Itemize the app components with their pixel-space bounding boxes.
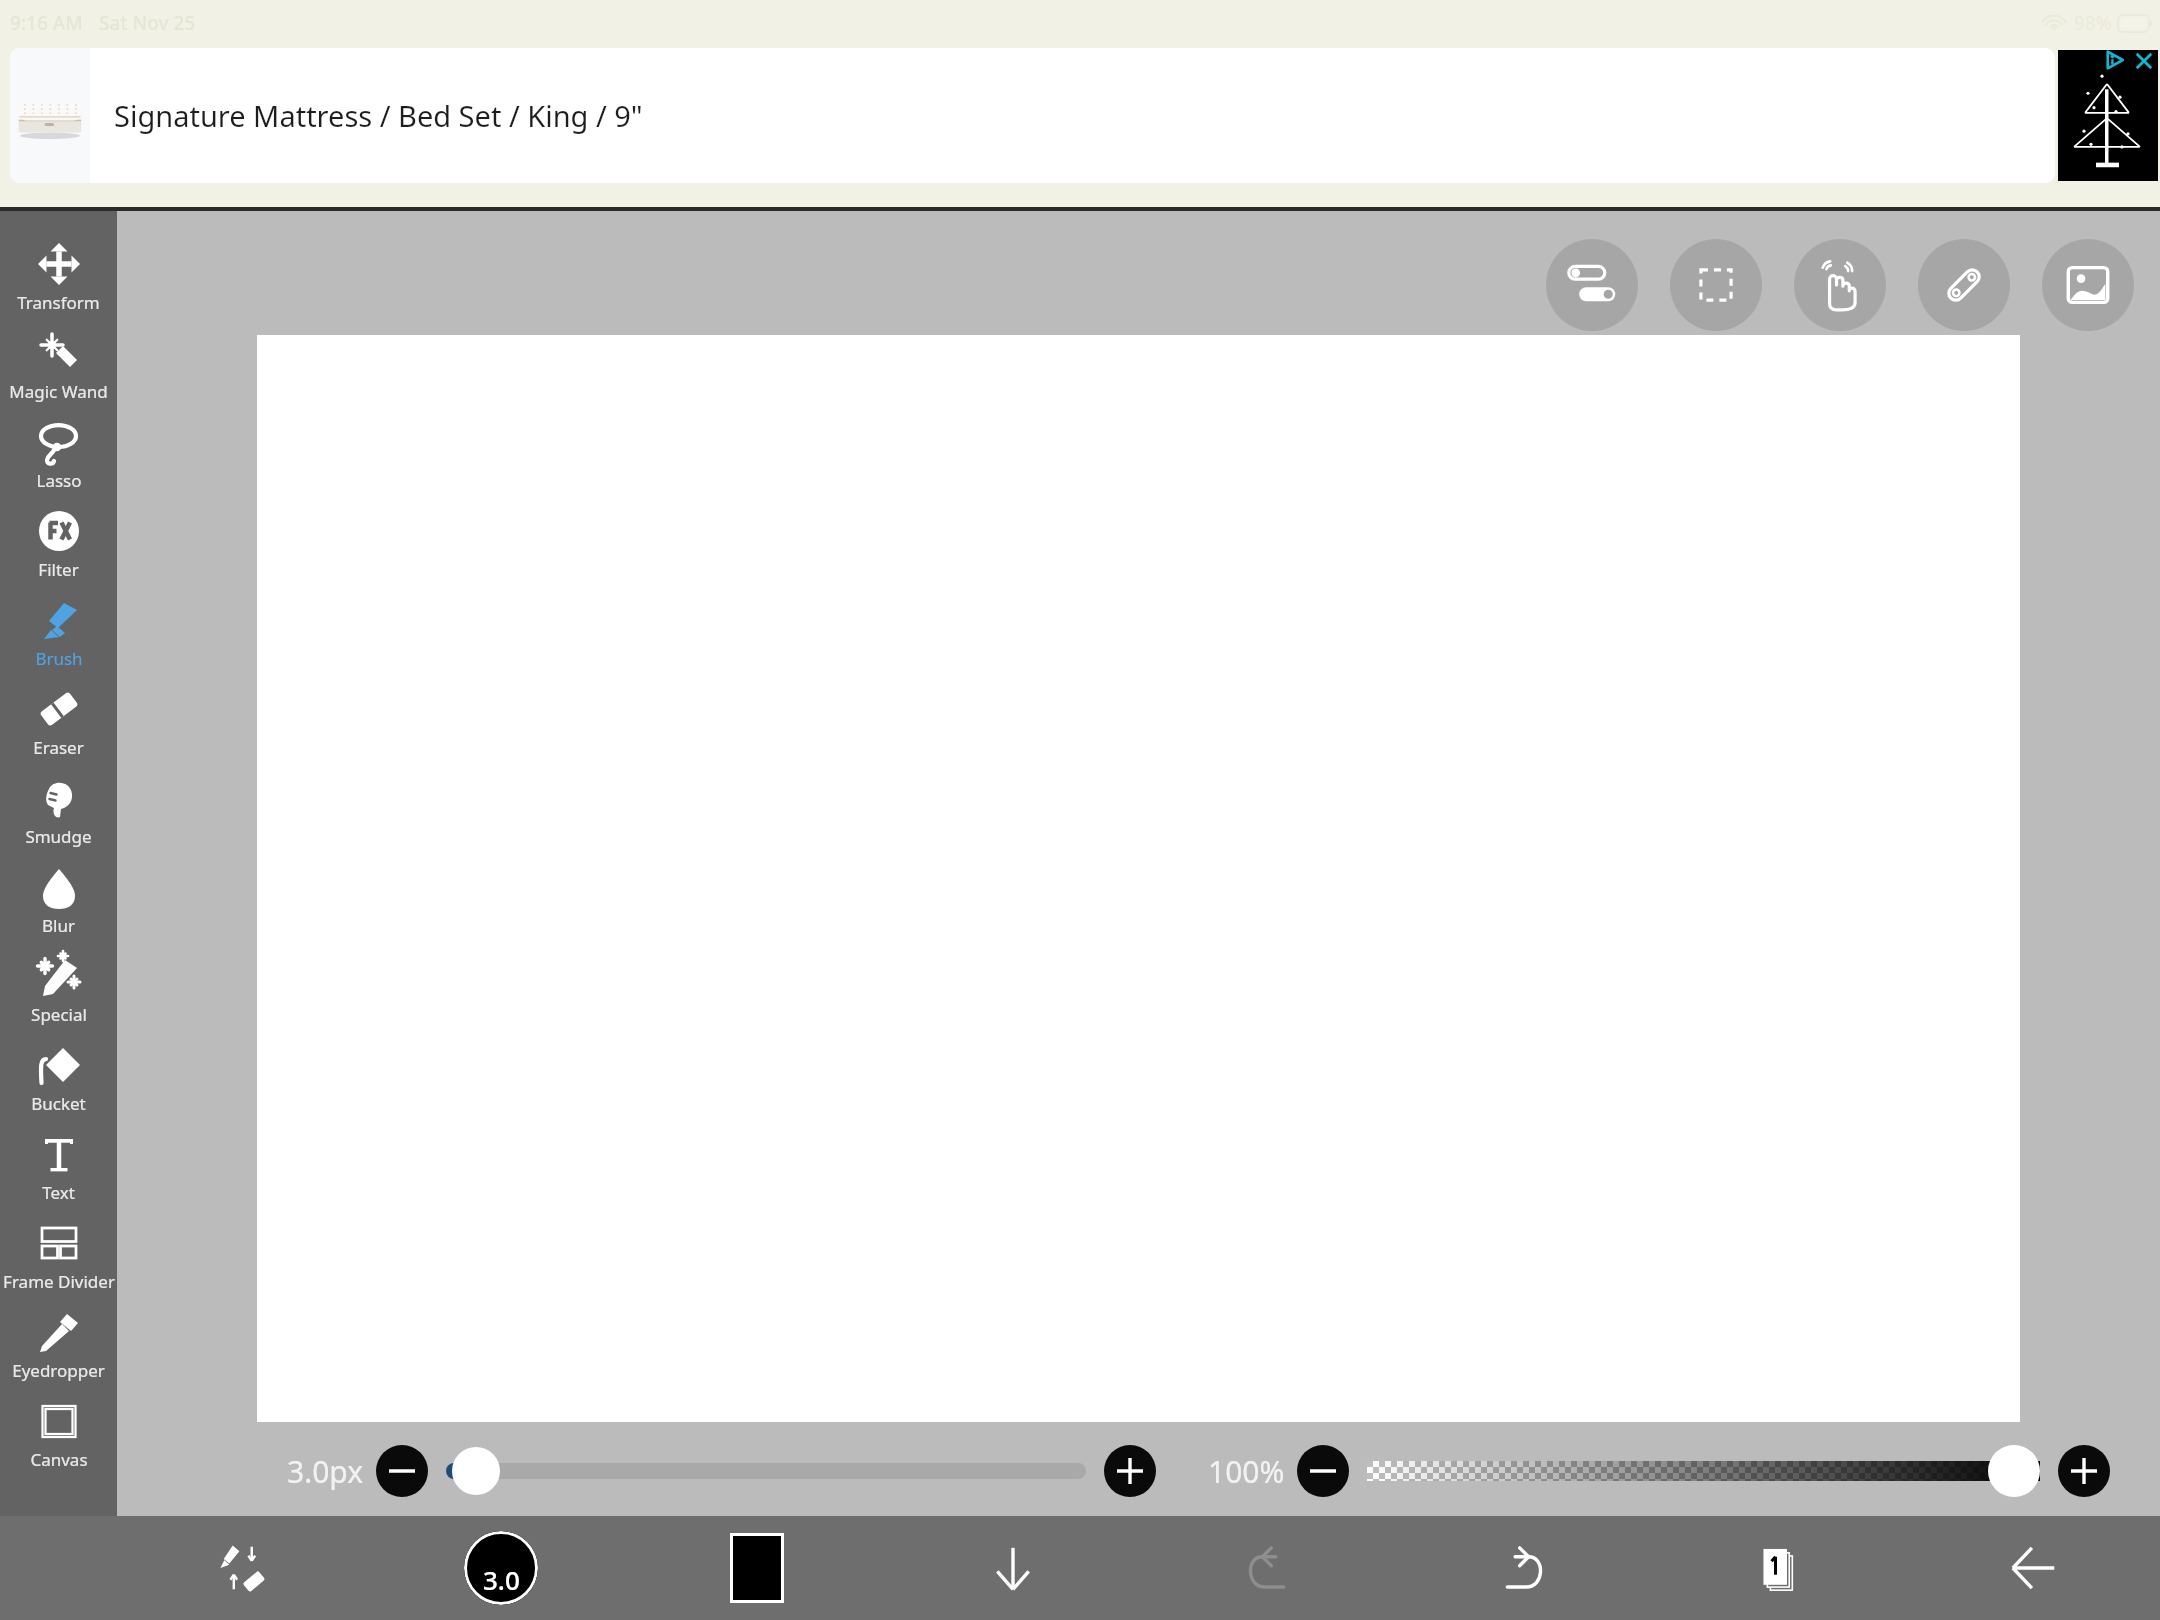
button[interactable]: Canvas bbox=[0, 1396, 117, 1471]
button[interactable]: Eyedropper bbox=[0, 1307, 117, 1382]
button[interactable]: Selection bbox=[1670, 239, 1762, 331]
button[interactable]: Undo bbox=[1140, 1516, 1395, 1620]
button[interactable]: Swap brush and eraser bbox=[117, 1516, 373, 1620]
staticText: 3.0px bbox=[287, 1451, 364, 1492]
button[interactable]: Download bbox=[885, 1516, 1140, 1620]
staticText: 3.0 bbox=[483, 1562, 520, 1597]
staticText: Blur bbox=[42, 914, 75, 937]
button[interactable]: Decrease opacity bbox=[1297, 1445, 1349, 1497]
button[interactable]: Text bbox=[0, 1129, 117, 1204]
button[interactable]: Redo bbox=[1395, 1516, 1650, 1620]
button[interactable] bbox=[446, 1443, 1086, 1499]
staticText: Signature Mattress / Bed Set / King / 9" bbox=[114, 96, 643, 135]
button[interactable]: Lasso bbox=[0, 417, 117, 492]
button[interactable]: Bucket bbox=[0, 1040, 117, 1115]
staticText: Brush bbox=[35, 647, 83, 670]
staticText: 98% bbox=[2074, 10, 2112, 36]
button[interactable]: Magic Wand bbox=[0, 328, 117, 403]
staticText: Smudge bbox=[25, 825, 92, 848]
button[interactable]: Ruler bbox=[1918, 239, 2010, 331]
staticText: Transform bbox=[17, 291, 100, 314]
button[interactable] bbox=[1367, 1443, 2040, 1499]
button[interactable]: Layers, 1 layer bbox=[1650, 1516, 1905, 1620]
staticText: Bucket bbox=[31, 1092, 86, 1115]
button[interactable]: Brush bbox=[0, 595, 117, 670]
button[interactable]: Back bbox=[1905, 1516, 2160, 1620]
staticText: Canvas bbox=[30, 1448, 88, 1471]
button[interactable]: Eraser bbox=[0, 684, 117, 759]
button[interactable]: Blur bbox=[0, 862, 117, 937]
button[interactable]: Decrease brush size bbox=[376, 1445, 428, 1497]
staticText: Special bbox=[31, 1003, 87, 1026]
button[interactable]: Gesture bbox=[1794, 239, 1886, 331]
staticText: Text bbox=[42, 1181, 75, 1204]
staticText: 9:16 AM bbox=[10, 10, 83, 36]
button[interactable]: Increase brush size bbox=[1104, 1445, 1156, 1497]
staticText: 100% bbox=[1208, 1451, 1285, 1492]
staticText: Filter bbox=[38, 558, 79, 581]
button[interactable]: Layer settings bbox=[1546, 239, 1638, 331]
staticText: Sat Nov 25 bbox=[99, 10, 196, 36]
button[interactable]: Increase opacity bbox=[2058, 1445, 2110, 1497]
button[interactable]: Smudge bbox=[0, 773, 117, 848]
button[interactable]: Transform bbox=[0, 239, 117, 314]
staticText: Lasso bbox=[36, 469, 82, 492]
button[interactable]: Filter bbox=[0, 506, 117, 581]
button[interactable]: Close ad bbox=[2130, 47, 2158, 75]
button[interactable]: Image bbox=[2042, 239, 2134, 331]
button[interactable]: Signature Mattress / Bed Set / King / 9" bbox=[10, 48, 2055, 183]
button[interactable]: Special bbox=[0, 951, 117, 1026]
staticText: Eraser bbox=[33, 736, 84, 759]
button[interactable]: Brush size 3.0 bbox=[464, 1531, 538, 1605]
staticText: Eyedropper bbox=[12, 1359, 105, 1382]
other: Ad choices bbox=[2102, 47, 2128, 73]
staticText: Magic Wand bbox=[9, 380, 108, 403]
staticText: Frame Divider bbox=[3, 1270, 115, 1293]
button[interactable]: Frame Divider bbox=[0, 1218, 117, 1293]
